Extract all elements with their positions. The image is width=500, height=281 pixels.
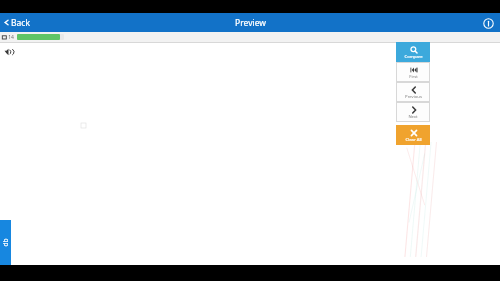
button[interactable]: Previous: [396, 82, 430, 102]
staticText: 14: [8, 34, 14, 41]
staticText: Feedback: [0, 237, 19, 248]
button[interactable]: Feedback: [0, 220, 11, 265]
button[interactable]: First: [396, 62, 430, 82]
staticText: Back: [11, 17, 30, 29]
staticText: Next: [408, 114, 418, 120]
staticText: Compare: [404, 54, 423, 60]
staticText: Preview: [235, 17, 266, 29]
button[interactable]: Information: [481, 16, 495, 30]
button[interactable]: Back: [3, 13, 500, 32]
button[interactable]: Next: [396, 102, 430, 122]
button[interactable]: Compare: [396, 42, 430, 62]
button[interactable]: Clear All: [396, 125, 430, 145]
button[interactable]: Audio: [3, 46, 15, 58]
staticText: Previous: [405, 94, 422, 100]
staticText: Clear All: [405, 137, 422, 143]
staticText: First: [409, 74, 418, 80]
